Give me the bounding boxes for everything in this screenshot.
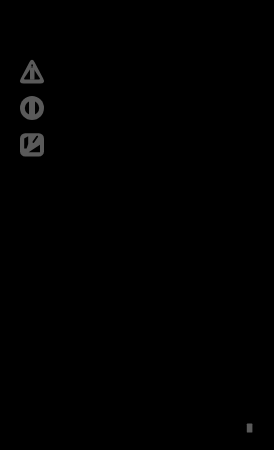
button[interactable]: Error xyxy=(20,96,44,120)
button[interactable]: Image xyxy=(20,133,44,157)
button[interactable]: Warning xyxy=(20,59,44,83)
button[interactable]: Indicator xyxy=(242,418,258,434)
